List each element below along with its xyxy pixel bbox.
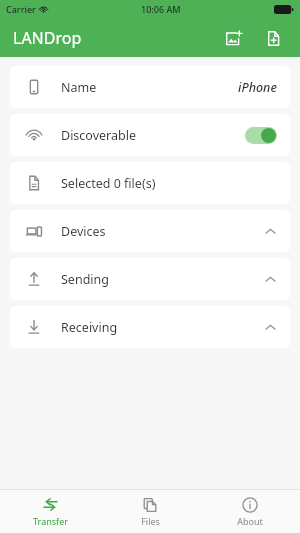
staticText: Discoverable	[61, 127, 136, 144]
button[interactable]: Add image	[216, 21, 250, 55]
staticText: LANDrop	[13, 27, 82, 49]
staticText: Carrier	[6, 3, 36, 15]
staticText: Transfer	[33, 515, 68, 527]
button[interactable]: Receiving	[10, 306, 290, 348]
button[interactable]: Devices	[10, 210, 290, 252]
staticText: Name	[61, 79, 97, 96]
button[interactable]: About	[200, 490, 300, 533]
button[interactable]: Selected 0 file(s)	[10, 162, 290, 204]
staticText: Sending	[61, 271, 109, 288]
staticText: 10:06 AM	[141, 3, 181, 15]
staticText: Files	[141, 515, 160, 527]
button[interactable]: Files	[100, 490, 200, 533]
staticText: iPhone	[238, 79, 277, 96]
button[interactable]: Name	[10, 66, 290, 108]
button[interactable]: Discoverable	[10, 114, 290, 156]
button[interactable]: Transfer	[0, 490, 100, 533]
staticText: Receiving	[61, 319, 118, 336]
button[interactable]: Add file	[256, 21, 290, 55]
button[interactable]	[245, 127, 277, 144]
button[interactable]: Sending	[10, 258, 290, 300]
staticText: Selected 0 file(s)	[61, 175, 156, 192]
staticText: Devices	[61, 223, 106, 240]
staticText: About	[237, 515, 263, 527]
